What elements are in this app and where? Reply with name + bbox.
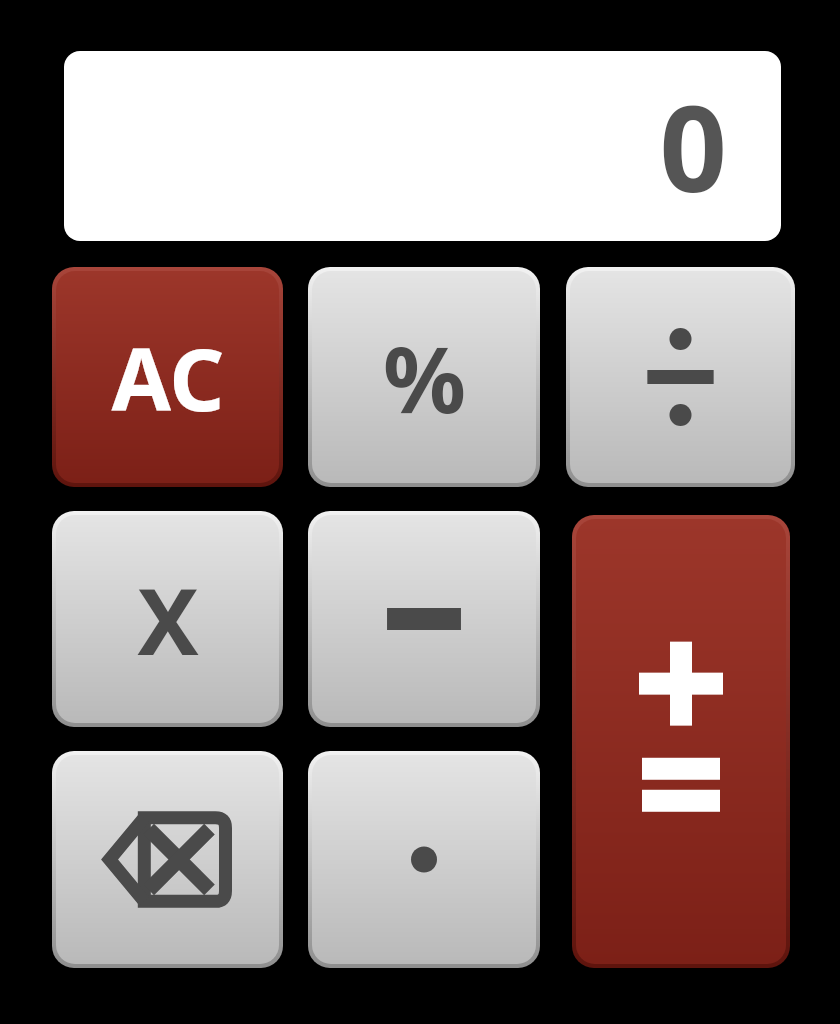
button[interactable]: % [308, 267, 540, 487]
button[interactable]: AC [52, 267, 283, 487]
staticText: 0 [64, 66, 727, 227]
staticText: AC [111, 319, 225, 436]
button[interactable]: Divide [566, 267, 795, 487]
button[interactable]: 0 [64, 51, 781, 241]
button[interactable]: Backspace [52, 751, 283, 968]
staticText: X [137, 557, 199, 682]
button[interactable]: Decimal point [308, 751, 540, 968]
button[interactable]: Plus equals [572, 515, 790, 968]
staticText: % [383, 315, 466, 440]
button[interactable]: X [52, 511, 283, 727]
button[interactable]: Minus [308, 511, 540, 727]
